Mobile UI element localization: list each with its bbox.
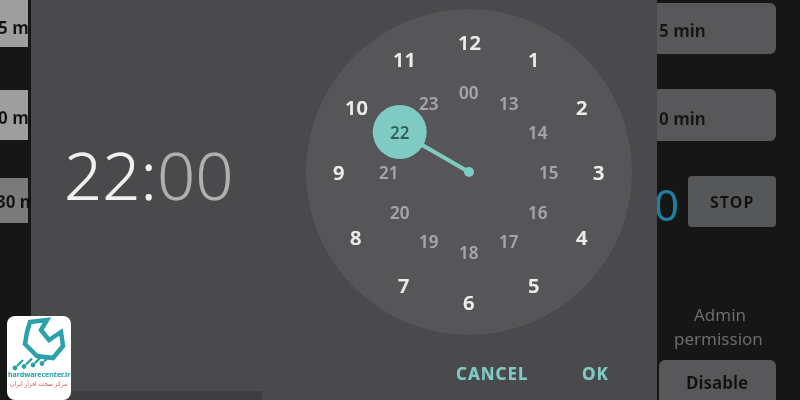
staticText: 5 min [659,19,706,42]
button[interactable]: STOP [688,176,776,227]
staticText: OK [582,362,609,385]
staticText: 6 [463,289,475,316]
staticText: 14 [528,121,548,144]
staticText: 3 [593,159,605,186]
staticText: 16 [528,201,548,224]
staticText: مرکز سخت افزار ایران [10,380,68,388]
staticText: 00 [459,81,479,104]
staticText: 11 [393,46,416,73]
staticText: 0 mi [0,106,34,129]
staticText: 5 m [0,16,29,39]
staticText: 12 [458,29,481,56]
button[interactable] [0,178,28,223]
staticText: 9 [333,159,345,186]
staticText: CANCEL [456,362,529,385]
staticText: 17 [499,230,519,253]
button[interactable] [0,90,28,140]
staticText: 0 [654,174,680,234]
staticText: permission [674,327,763,350]
staticText: 8 [350,224,362,251]
staticText: Disable [686,371,749,394]
button[interactable] [646,3,776,54]
staticText: 21 [379,161,399,184]
staticText: 22 [390,121,410,144]
staticText: 23 [419,92,439,115]
button[interactable]: CANCEL [456,362,529,385]
staticText: 15 [539,161,559,184]
staticText: 4 [576,224,588,251]
staticText: 5 [528,272,540,299]
staticText: 10 [345,94,368,121]
button[interactable]: hardwarecenter.ir [7,316,71,400]
staticText: 2 [576,94,588,121]
staticText: hardwarecenter.ir [8,370,71,380]
staticText: 7 [398,272,410,299]
staticText: STOP [710,191,755,213]
staticText: 19 [419,230,439,253]
staticText: 18 [459,241,479,264]
staticText: 22: [64,128,157,219]
button[interactable] [0,0,28,47]
staticText: 30 m [0,190,37,213]
staticText: 20 [390,201,410,224]
staticText: Admin [694,303,747,326]
button[interactable] [646,89,776,141]
staticText: 1 [528,46,540,73]
staticText: 0 min [659,107,706,130]
button[interactable]: OK [582,362,609,385]
staticText: 00 [157,128,234,219]
button[interactable]: Disable [659,360,776,400]
staticText: 13 [499,92,519,115]
